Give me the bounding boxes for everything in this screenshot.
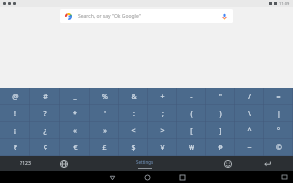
button[interactable]: €: [60, 139, 90, 156]
staticText: ]: [219, 126, 222, 136]
button[interactable]: ¿: [30, 122, 60, 139]
staticText: «: [73, 126, 77, 136]
staticText: >: [160, 126, 165, 136]
button[interactable]: @: [0, 88, 30, 105]
button[interactable]: *: [60, 105, 90, 122]
button[interactable]: Change language: [50, 156, 77, 171]
button[interactable]: =: [264, 88, 293, 105]
staticText: @: [12, 92, 19, 102]
button[interactable]: Home: [142, 172, 152, 182]
staticText: <: [131, 126, 136, 136]
staticText: \: [248, 109, 251, 119]
staticText: ₹: [13, 143, 18, 153]
button[interactable]: -: [177, 88, 206, 105]
button[interactable]: «: [60, 122, 90, 139]
button[interactable]: \: [235, 105, 264, 122]
button[interactable]: $: [119, 139, 148, 156]
staticText: ¿: [43, 126, 47, 136]
staticText: 11:09: [279, 1, 290, 6]
button[interactable]: ¡: [0, 122, 30, 139]
staticText: Settings: [136, 159, 154, 165]
staticText: =: [276, 92, 281, 102]
button[interactable]: :: [119, 105, 148, 122]
button[interactable]: £: [90, 139, 119, 156]
staticText: °: [277, 126, 280, 136]
button[interactable]: ?123: [0, 156, 50, 171]
button[interactable]: %: [90, 88, 119, 105]
button[interactable]: Emoji: [213, 156, 242, 171]
staticText: ©: [276, 143, 282, 153]
staticText: -: [190, 92, 193, 102]
staticText: »: [103, 126, 107, 136]
staticText: ¥: [160, 143, 165, 153]
button[interactable]: ₹: [0, 139, 30, 156]
staticText: :: [133, 109, 135, 119]
staticText: *: [73, 109, 77, 119]
button[interactable]: ;: [148, 105, 177, 122]
staticText: Search, or say "Ok Google": [78, 13, 141, 20]
staticText: ': [104, 109, 106, 119]
other: Voice search: [221, 13, 228, 20]
staticText: %: [102, 92, 108, 102]
button[interactable]: Search, or say "Ok Google": [60, 9, 233, 23]
button[interactable]: »: [90, 122, 119, 139]
staticText: [: [190, 126, 193, 136]
staticText: $: [131, 143, 136, 153]
button[interactable]: ]: [206, 122, 235, 139]
button[interactable]: ): [206, 105, 235, 122]
staticText: ;: [162, 109, 164, 119]
staticText: ?123: [20, 160, 31, 167]
staticText: !: [14, 109, 16, 119]
button[interactable]: ¥: [148, 139, 177, 156]
staticText: ): [219, 109, 222, 119]
staticText: /: [248, 92, 251, 102]
staticText: &: [131, 92, 137, 102]
button[interactable]: &: [119, 88, 148, 105]
staticText: |: [277, 109, 281, 119]
button[interactable]: °: [264, 122, 293, 139]
button[interactable]: Settings: [77, 156, 213, 171]
staticText: £: [102, 143, 107, 153]
button[interactable]: (: [177, 105, 206, 122]
button[interactable]: #: [30, 88, 60, 105]
staticText: ": [219, 92, 222, 102]
button[interactable]: Recents: [177, 172, 187, 182]
button[interactable]: Enter: [242, 156, 293, 171]
button[interactable]: ¢: [30, 139, 60, 156]
staticText: ₱: [218, 143, 223, 153]
button[interactable]: ^: [235, 122, 264, 139]
staticText: ¡: [14, 126, 16, 136]
button[interactable]: ©: [264, 139, 293, 156]
button[interactable]: ~: [235, 139, 264, 156]
staticText: ¢: [43, 143, 48, 153]
button[interactable]: ?: [30, 105, 60, 122]
button[interactable]: <: [119, 122, 148, 139]
staticText: €: [73, 143, 78, 153]
button[interactable]: ": [206, 88, 235, 105]
button[interactable]: ': [90, 105, 119, 122]
button[interactable]: /: [235, 88, 264, 105]
button[interactable]: [: [177, 122, 206, 139]
staticText: #: [43, 92, 48, 102]
staticText: ^: [247, 126, 252, 136]
staticText: _: [73, 92, 77, 102]
button[interactable]: ₩: [177, 139, 206, 156]
button[interactable]: Back: [107, 172, 117, 182]
button[interactable]: _: [60, 88, 90, 105]
button[interactable]: ₱: [206, 139, 235, 156]
button[interactable]: |: [264, 105, 293, 122]
button[interactable]: Keyboard: [280, 173, 288, 181]
staticText: ₩: [189, 143, 194, 153]
staticText: +: [160, 92, 165, 102]
staticText: ~: [247, 143, 252, 153]
staticText: ?: [43, 109, 47, 119]
button[interactable]: !: [0, 105, 30, 122]
button[interactable]: +: [148, 88, 177, 105]
staticText: (: [190, 109, 193, 119]
button[interactable]: >: [148, 122, 177, 139]
